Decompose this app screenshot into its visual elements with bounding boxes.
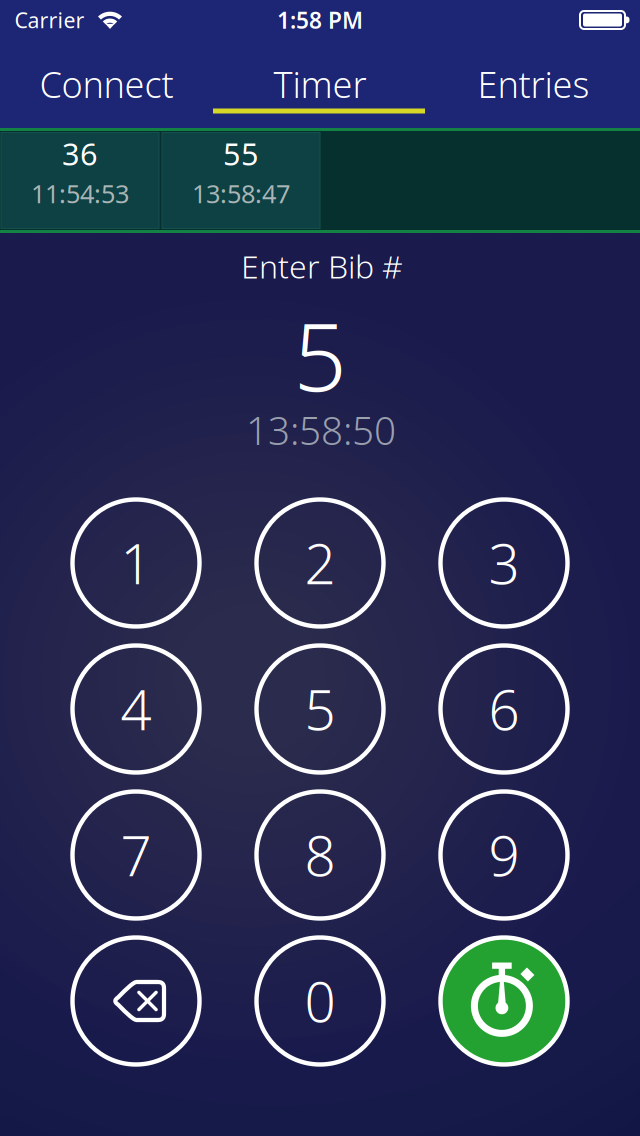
staticText: 3 xyxy=(488,527,519,599)
staticText: 4 xyxy=(120,673,151,745)
staticText: 55 xyxy=(223,133,259,174)
staticText: 0 xyxy=(304,965,335,1037)
button[interactable]: 4 xyxy=(71,644,201,774)
staticText: 1:58 PM xyxy=(277,5,363,35)
button[interactable]: Entries xyxy=(427,40,640,128)
staticText: 1 xyxy=(120,527,151,599)
staticText: 11:54:53 xyxy=(31,177,129,210)
staticText: Timer xyxy=(273,60,366,108)
button[interactable]: 7 xyxy=(71,790,201,920)
button[interactable]: 6 xyxy=(439,644,569,774)
staticText: 13:58:47 xyxy=(192,177,290,210)
staticText: 5 xyxy=(304,673,335,745)
button[interactable]: 2 xyxy=(255,498,385,628)
button[interactable]: 0 xyxy=(255,936,385,1066)
staticText: Connect xyxy=(39,60,173,108)
staticText: 8 xyxy=(304,819,335,891)
button[interactable]: 8 xyxy=(255,790,385,920)
staticText: 7 xyxy=(120,819,151,891)
button[interactable]: Delete xyxy=(71,936,201,1066)
staticText: Enter Bib # xyxy=(241,245,403,287)
button[interactable]: 36 xyxy=(1,132,159,228)
staticText: 2 xyxy=(304,527,335,599)
staticText: 6 xyxy=(488,673,519,745)
staticText: 36 xyxy=(62,133,98,174)
staticText: 13:58:50 xyxy=(246,404,396,456)
staticText: Carrier xyxy=(14,6,84,34)
button[interactable]: 3 xyxy=(439,498,569,628)
button[interactable]: Start timer xyxy=(439,936,569,1066)
button[interactable]: Timer xyxy=(213,40,427,128)
button[interactable]: 5 xyxy=(255,644,385,774)
staticText: 9 xyxy=(488,819,519,891)
staticText: Entries xyxy=(477,60,589,108)
button[interactable]: Connect xyxy=(0,40,213,128)
staticText: 5 xyxy=(293,293,346,417)
button[interactable]: 1 xyxy=(71,498,201,628)
button[interactable]: 55 xyxy=(162,132,320,228)
button[interactable]: 9 xyxy=(439,790,569,920)
